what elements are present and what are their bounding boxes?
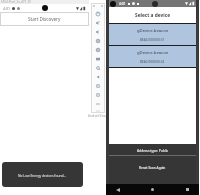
button[interactable]: Address type: Public bbox=[109, 144, 196, 155]
button[interactable]: Emulator control 3 bbox=[91, 36, 105, 45]
staticText: BEAC:0000:00:32 bbox=[140, 60, 165, 64]
button[interactable]: Back bbox=[112, 184, 123, 195]
button[interactable]: Emulator control 4 bbox=[91, 45, 105, 54]
button[interactable]: Start Discovery bbox=[0, 12, 89, 26]
button[interactable]: Recent apps bbox=[182, 184, 193, 195]
button[interactable]: gDevice-beacon bbox=[109, 46, 196, 67]
button[interactable]: Emulator control 10 bbox=[91, 99, 105, 108]
staticText: BEAC:0000:00:31 bbox=[140, 38, 165, 42]
button[interactable]: gDevice-beacon bbox=[109, 24, 196, 45]
button[interactable]: Emulator control 1 bbox=[91, 18, 105, 27]
button[interactable]: Reset Scan Again bbox=[109, 156, 196, 184]
button[interactable]: Emulator control 0 bbox=[91, 9, 105, 18]
button[interactable]: Emulator control 6 bbox=[91, 63, 105, 72]
staticText: 4:01 bbox=[3, 6, 10, 11]
button[interactable]: Emulator control 7 bbox=[91, 72, 105, 81]
button[interactable]: Emulator control 5 bbox=[91, 54, 105, 63]
staticText: gDevice-beacon bbox=[137, 50, 169, 56]
staticText: No Low Energy devices found... bbox=[18, 173, 67, 177]
staticText: Start Discovery bbox=[28, 16, 61, 22]
button[interactable]: Emulator control 8 bbox=[91, 81, 105, 90]
staticText: Address type: Public bbox=[137, 148, 169, 152]
staticText: Select a device bbox=[135, 12, 171, 19]
staticText: 4:01 bbox=[119, 2, 126, 6]
button[interactable]: Home bbox=[147, 184, 158, 195]
button[interactable]: Emulator control 11 bbox=[91, 108, 105, 113]
staticText: gDevice-beacon bbox=[137, 28, 169, 34]
staticText: Android Emulator - 5554 bbox=[88, 114, 123, 118]
staticText: 5554:Pixel_3a_API_30 bbox=[1, 0, 31, 4]
button[interactable]: Emulator control 9 bbox=[91, 90, 105, 99]
staticText: Reset Scan Again bbox=[139, 165, 166, 169]
button[interactable]: Emulator control 2 bbox=[91, 27, 105, 36]
